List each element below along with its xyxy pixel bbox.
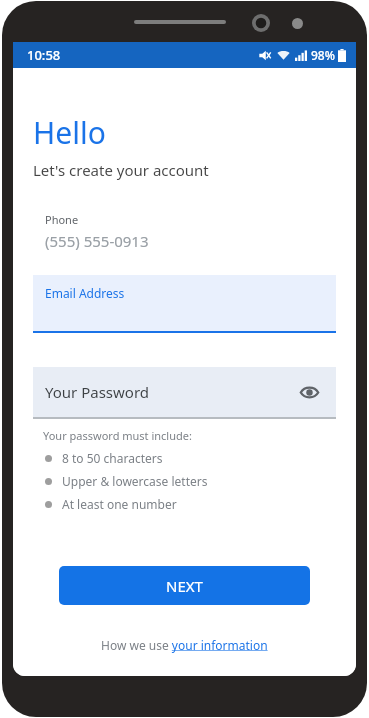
button[interactable]: Your Password	[33, 367, 336, 419]
staticText: Email Address	[45, 285, 125, 301]
staticText: Let's create your account	[33, 160, 209, 180]
button[interactable]: How we use your information	[101, 637, 268, 653]
staticText: How we use your information	[101, 637, 268, 653]
staticText: Upper & lowercase letters	[62, 473, 208, 489]
staticText: Your password must include:	[43, 428, 192, 443]
staticText: Phone	[45, 212, 79, 227]
staticText: Your Password	[45, 382, 150, 402]
button[interactable]: Email Address	[33, 275, 336, 333]
button[interactable]: Show password	[296, 379, 322, 405]
staticText: Hello	[33, 112, 106, 153]
staticText: NEXT	[166, 576, 203, 596]
staticText: 8 to 50 characters	[62, 450, 163, 466]
staticText: 10:58	[27, 46, 61, 64]
staticText: 98%	[311, 47, 335, 63]
staticText: (555) 555-0913	[45, 231, 149, 251]
staticText: At least one number	[62, 496, 177, 512]
button[interactable]: NEXT	[59, 566, 310, 605]
